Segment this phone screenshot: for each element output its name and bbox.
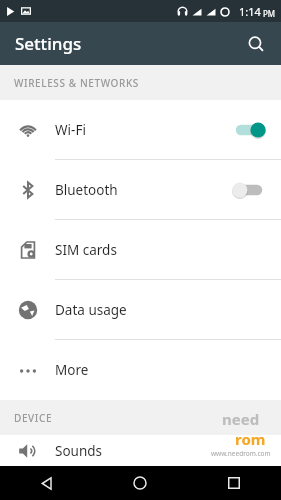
button[interactable]: Data usage — [0, 280, 281, 340]
staticText: PM — [263, 8, 276, 19]
button[interactable]: SIM cards — [0, 220, 281, 280]
staticText: SIM cards — [55, 241, 281, 259]
button[interactable]: Wi-Fi switch — [229, 115, 269, 145]
staticText: Data usage — [55, 301, 281, 319]
button[interactable]: Search — [239, 27, 273, 61]
button[interactable]: Home — [93, 466, 187, 500]
staticText: Sounds — [55, 442, 281, 460]
button[interactable]: More — [0, 340, 281, 400]
button[interactable]: Bluetooth — [0, 160, 281, 220]
button[interactable]: Bluetooth switch — [229, 175, 269, 205]
staticText: WIRELESS & NETWORKS — [14, 76, 139, 90]
staticText: Wi-Fi — [55, 121, 229, 139]
button[interactable]: Sounds — [0, 435, 281, 466]
button[interactable]: Back — [0, 466, 93, 500]
staticText: Bluetooth — [55, 181, 229, 199]
staticText: 1:14 — [239, 4, 261, 19]
button[interactable]: Wi-Fi — [0, 100, 281, 160]
button[interactable]: Recent apps — [187, 466, 281, 500]
staticText: More — [55, 361, 281, 379]
staticText: Settings — [15, 32, 82, 55]
staticText: www.needrom.com — [211, 449, 271, 458]
staticText: need — [222, 409, 260, 429]
staticText: DEVICE — [14, 411, 53, 425]
staticText: rom — [235, 429, 266, 449]
